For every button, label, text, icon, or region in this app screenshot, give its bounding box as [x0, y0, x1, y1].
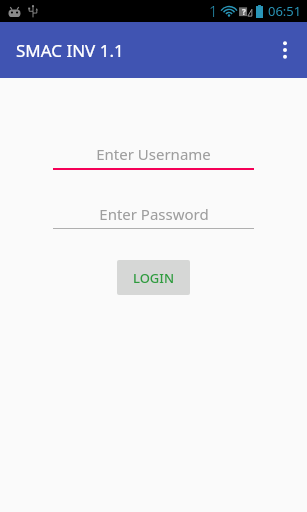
- button[interactable]: LOGIN: [117, 260, 190, 295]
- button[interactable]: Enter Username: [53, 140, 254, 170]
- staticText: ?: [242, 6, 246, 17]
- staticText: Enter Password: [99, 204, 209, 224]
- staticText: LOGIN: [133, 269, 175, 287]
- staticText: 06:51: [268, 2, 302, 20]
- button[interactable]: More options: [263, 28, 307, 72]
- button[interactable]: Enter Password: [53, 200, 254, 229]
- staticText: SMAC INV 1.1: [16, 39, 124, 62]
- staticText: Enter Username: [96, 144, 211, 164]
- staticText: 1: [209, 1, 218, 21]
